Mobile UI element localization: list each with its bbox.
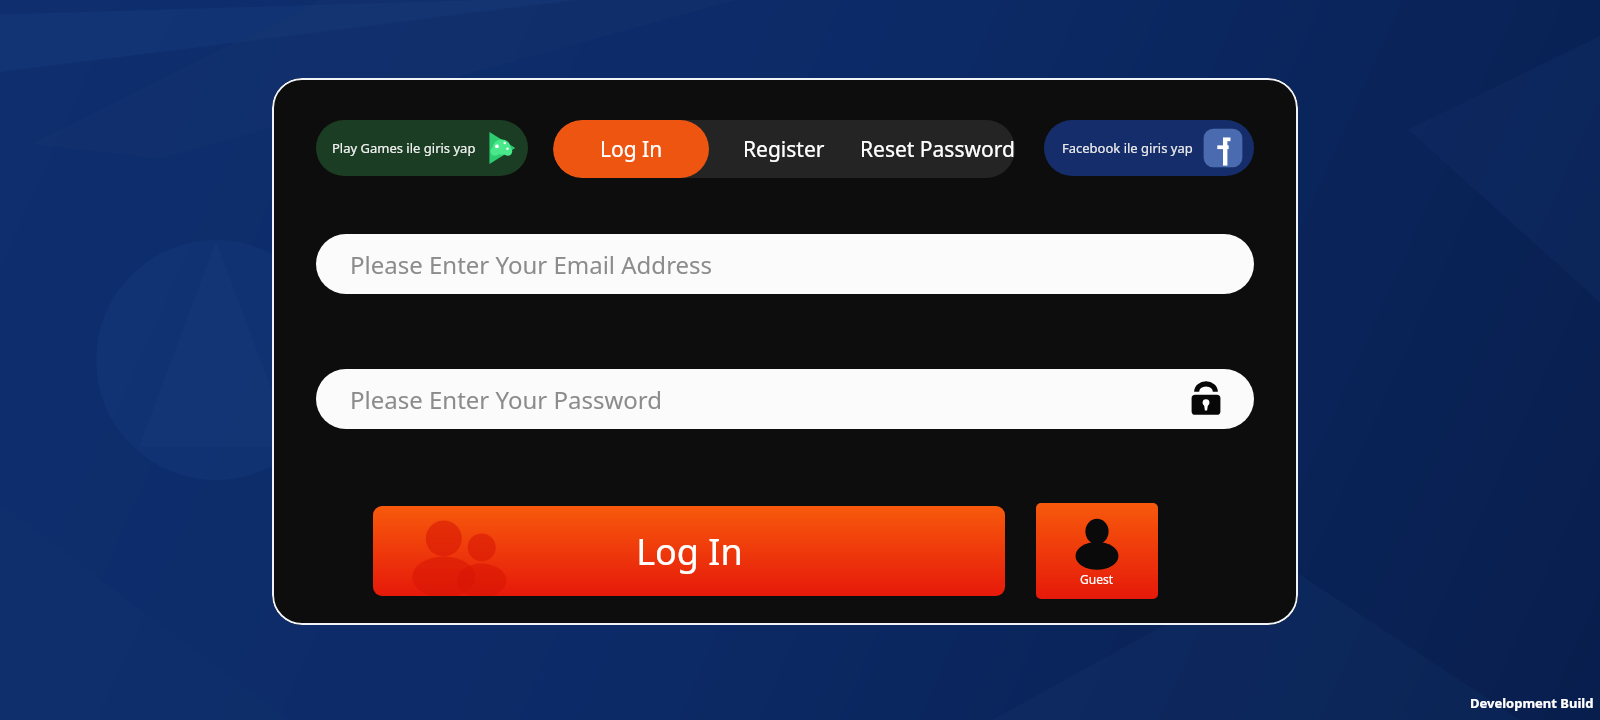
staticText: Play Games ile giris yap bbox=[332, 139, 476, 157]
button[interactable]: Please Enter Your Password bbox=[316, 369, 1254, 429]
button[interactable]: Log In bbox=[553, 120, 709, 178]
button[interactable]: Log In bbox=[373, 506, 1005, 596]
button[interactable]: Please Enter Your Email Address bbox=[316, 234, 1254, 294]
staticText: Facebook ile giris yap bbox=[1062, 139, 1193, 157]
staticText: Guest bbox=[1080, 571, 1114, 587]
staticText: Development Build bbox=[1470, 694, 1594, 712]
button[interactable]: Reset Password bbox=[859, 120, 1015, 178]
staticText: Reset Password bbox=[860, 135, 1015, 164]
button[interactable]: Register bbox=[709, 120, 859, 178]
staticText: Log In bbox=[600, 135, 663, 164]
staticText: Please Enter Your Email Address bbox=[350, 248, 713, 281]
button[interactable]: Play Games ile giris yap bbox=[316, 120, 528, 176]
staticText: Register bbox=[743, 135, 825, 164]
staticText: Please Enter Your Password bbox=[350, 383, 662, 416]
button[interactable]: Facebook ile giris yap bbox=[1044, 120, 1254, 176]
staticText: Log In bbox=[636, 527, 743, 576]
button[interactable]: Guest login bbox=[1036, 503, 1158, 599]
